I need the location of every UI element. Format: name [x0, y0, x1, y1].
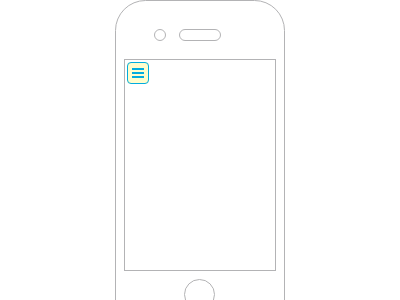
button[interactable]: Open navigation menu: [127, 62, 149, 84]
